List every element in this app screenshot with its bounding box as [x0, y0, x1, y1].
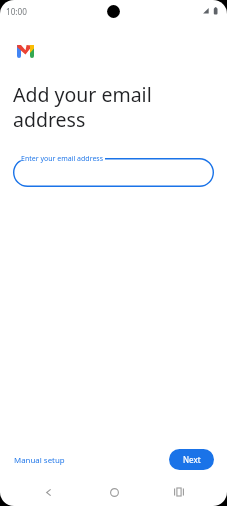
button[interactable]: Back	[36, 480, 60, 504]
staticText: Enter your email address	[21, 154, 104, 164]
button[interactable]: Home	[102, 480, 126, 504]
button[interactable]: Recent apps	[167, 480, 191, 504]
staticText: Add your email address	[13, 81, 152, 133]
staticText: Manual setup	[14, 455, 65, 466]
staticText: 10:00	[6, 6, 27, 17]
button[interactable]: Manual setup	[12, 452, 67, 469]
staticText: Next	[183, 454, 201, 465]
button[interactable]: Next	[169, 449, 214, 470]
button[interactable]: Enter your email address	[13, 158, 214, 187]
